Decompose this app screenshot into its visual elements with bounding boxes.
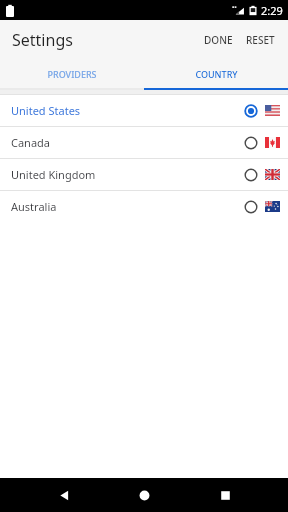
button[interactable]: Recent apps	[208, 478, 242, 512]
staticText: COUNTRY	[195, 68, 238, 80]
button[interactable]: United States	[0, 95, 288, 126]
button[interactable]: United Kingdom	[0, 159, 288, 190]
staticText: United States	[11, 103, 244, 118]
staticText: PROVIDERS	[47, 68, 97, 80]
button[interactable]: Australia	[0, 191, 288, 222]
staticText: DONE	[204, 33, 233, 47]
button[interactable]: Canada	[0, 127, 288, 158]
button[interactable]: DONE	[199, 28, 238, 52]
button[interactable]: PROVIDERS	[0, 60, 144, 88]
staticText: RESET	[246, 33, 275, 47]
button[interactable]: Back	[47, 478, 81, 512]
staticText: 2:29	[261, 3, 283, 18]
staticText: United Kingdom	[11, 167, 244, 182]
button[interactable]: RESET	[241, 28, 280, 52]
staticText: Canada	[11, 135, 244, 150]
button[interactable]: COUNTRY	[144, 60, 288, 88]
staticText: Settings	[12, 29, 73, 51]
staticText: Australia	[11, 199, 244, 214]
button[interactable]: Home	[127, 478, 161, 512]
